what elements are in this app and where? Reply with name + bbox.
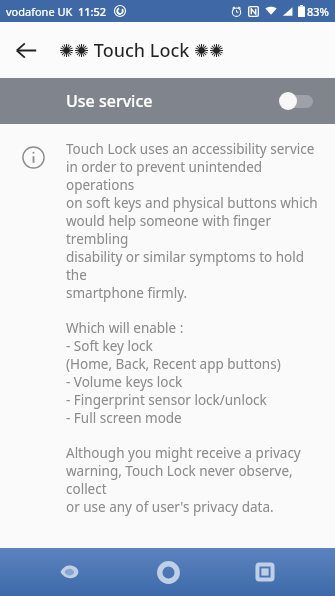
button[interactable]: Use service [0, 78, 335, 124]
button[interactable]: Navigate up [6, 30, 46, 70]
button[interactable]: Home [141, 548, 195, 596]
staticText: vodafone UK [6, 4, 73, 19]
button[interactable]: Recent apps [238, 548, 292, 596]
staticText: Touch Lock uses an accessibility service… [66, 140, 327, 302]
staticText: Which will enable : - Soft key lock (Hom… [66, 319, 281, 427]
button[interactable]: Back [43, 548, 97, 596]
staticText: ✺✺ Touch Lock ✺✺ [59, 38, 225, 63]
staticText: Although you might receive a privacy war… [66, 444, 327, 516]
staticText: 11:52 [78, 4, 107, 19]
staticText: Use service [66, 90, 153, 112]
staticText: 83% [307, 4, 329, 19]
